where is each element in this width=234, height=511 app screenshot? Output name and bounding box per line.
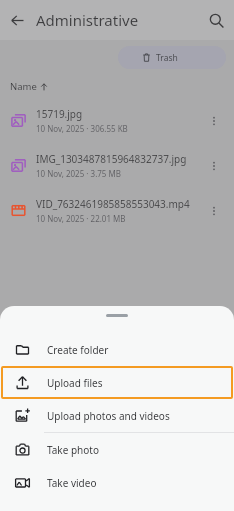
staticText: VID_7632461985858553043.mp4	[36, 197, 190, 211]
staticText: Upload files	[47, 376, 103, 390]
button[interactable]: More options	[198, 105, 230, 137]
staticText: 10 Nov, 2025 · 306.55 KB	[36, 123, 128, 134]
staticText: Trash	[156, 52, 178, 64]
staticText: Name	[10, 80, 37, 93]
button[interactable]: Upload files	[1, 366, 233, 399]
staticText: Upload photos and videos	[47, 409, 170, 423]
button[interactable]: IMG_1303487815964832737.jpg	[0, 143, 234, 188]
button[interactable]: 15719.jpg	[0, 98, 234, 143]
button[interactable]: More options	[198, 195, 230, 227]
staticText: 10 Nov, 2025 · 22.01 MB	[36, 213, 126, 224]
button[interactable]: Take video	[0, 466, 234, 499]
button[interactable]: VID_7632461985858553043.mp4	[0, 188, 234, 233]
staticText: Take photo	[47, 443, 99, 457]
staticText: 10 Nov, 2025 · 3.75 MB	[36, 168, 121, 179]
staticText: IMG_1303487815964832737.jpg	[36, 152, 187, 166]
button[interactable]: Search	[198, 2, 234, 38]
staticText: Administrative	[36, 10, 139, 30]
button[interactable]: Take photo	[0, 433, 234, 466]
staticText: Take video	[47, 476, 97, 490]
button[interactable]: More options	[198, 150, 230, 182]
staticText: Create folder	[47, 343, 109, 357]
button[interactable]: Create folder	[0, 333, 234, 366]
button[interactable]: Trash	[118, 46, 226, 69]
button[interactable]: Back	[0, 3, 34, 37]
staticText: 15719.jpg	[36, 107, 83, 121]
button[interactable]: Upload photos and videos	[0, 399, 234, 432]
